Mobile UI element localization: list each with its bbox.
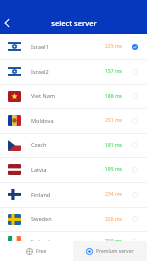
button[interactable]: Free (0, 241, 73, 261)
button[interactable]: Moldova (0, 108, 147, 133)
staticText: Moldova (31, 117, 54, 125)
staticText: Ireland (31, 238, 50, 246)
staticText: select server (51, 18, 97, 28)
staticText: 188 ms (105, 93, 122, 100)
staticText: Viet Nam (31, 92, 56, 100)
staticText: 226 ms (105, 216, 122, 223)
button[interactable]: Back (0, 15, 15, 31)
staticText: 231 ms (105, 117, 122, 124)
button[interactable]: Ireland (0, 227, 147, 256)
staticText: Czech (31, 141, 47, 149)
staticText: 210 ms (105, 238, 122, 245)
staticText: Israel1 (31, 43, 49, 51)
button[interactable]: Finland (0, 182, 147, 207)
button[interactable]: Czech (0, 133, 147, 157)
button[interactable]: Viet Nam (0, 84, 147, 108)
staticText: Premium server (96, 248, 134, 255)
staticText: 181 ms (105, 142, 122, 149)
staticText: 234 ms (105, 191, 122, 198)
staticText: 157 ms (105, 68, 122, 75)
staticText: 195 ms (105, 166, 122, 173)
button[interactable]: Latvia (0, 157, 147, 182)
button[interactable]: Sweden (0, 207, 147, 231)
staticText: Sweden (31, 215, 52, 223)
staticText: Finland (31, 191, 51, 199)
button[interactable]: Israel2 (0, 59, 147, 84)
button[interactable]: Premium server (73, 241, 147, 261)
staticText: 225 ms (105, 43, 122, 50)
staticText: Latvia (31, 166, 47, 174)
staticText: Israel2 (31, 68, 49, 76)
staticText: Free (36, 248, 47, 255)
button[interactable]: Israel1 (0, 34, 147, 59)
